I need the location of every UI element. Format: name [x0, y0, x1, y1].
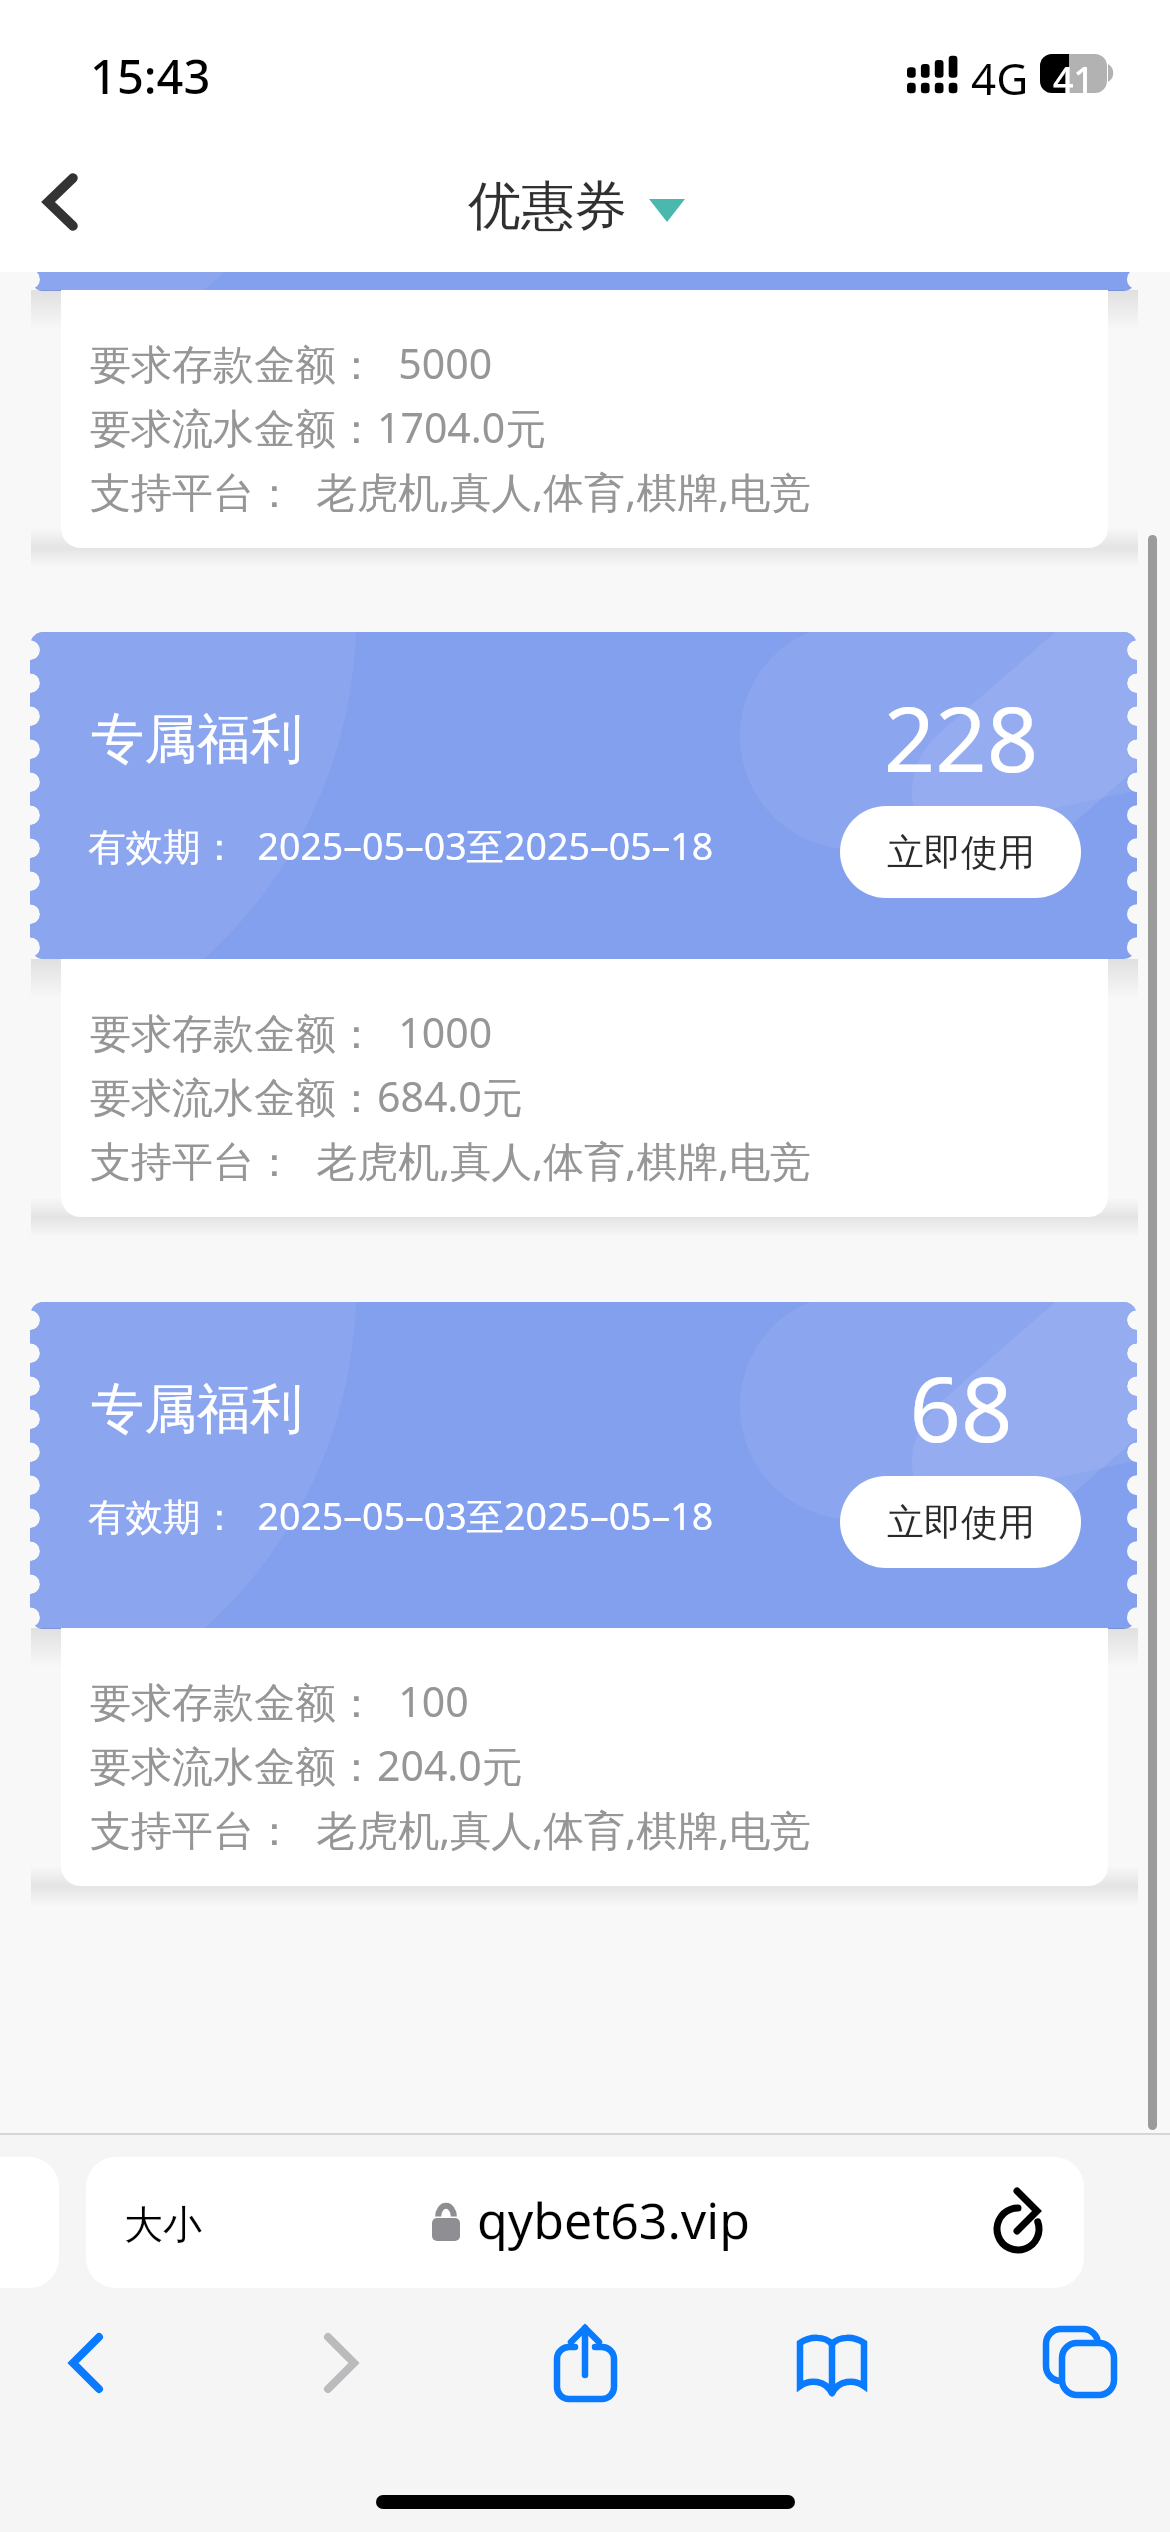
staticText: 4G [971, 48, 1029, 108]
staticText: 228 [822, 676, 1100, 799]
button[interactable]: Share [527, 2305, 643, 2421]
staticText: 大小 [124, 2200, 202, 2249]
button[interactable]: Back [29, 2305, 145, 2421]
button[interactable]: Forward [282, 2305, 398, 2421]
button[interactable]: Reload [984, 2183, 1060, 2259]
staticText: 41 [1053, 55, 1095, 104]
staticText: 专属福利 [91, 706, 303, 773]
staticText: 要求存款金额： 5000 [90, 335, 493, 391]
staticText: 228 [822, 8, 1100, 131]
staticText: 优惠券 [468, 173, 627, 240]
staticText: 68 [822, 1346, 1100, 1469]
staticText: 要求流水金额：204.0元 [90, 1737, 523, 1793]
staticText: 支持平台： 老虎机,真人,体育,棋牌,电竞 [90, 463, 812, 519]
button[interactable]: Tabs [1022, 2305, 1138, 2421]
staticText: 有效期： 2025–05–03至2025–05–18 [88, 820, 714, 871]
staticText: qybet63.vip [477, 2186, 750, 2254]
button[interactable]: 立即使用 [840, 806, 1081, 898]
staticText: 立即使用 [887, 829, 1035, 876]
staticText: 支持平台： 老虎机,真人,体育,棋牌,电竞 [90, 1801, 812, 1857]
button[interactable]: 立即使用 [840, 1476, 1081, 1568]
staticText: 专属福利 [91, 1376, 303, 1443]
staticText: 要求存款金额： 1000 [90, 1004, 493, 1060]
staticText: 要求流水金额：684.0元 [90, 1068, 523, 1124]
staticText: 有效期： 2025–05–03至2025–05–18 [88, 1490, 714, 1541]
button[interactable]: 大小 [86, 2157, 1084, 2288]
staticText: 立即使用 [887, 1499, 1035, 1546]
staticText: 要求流水金额：1704.0元 [90, 399, 547, 455]
staticText: 支持平台： 老虎机,真人,体育,棋牌,电竞 [90, 1132, 812, 1188]
staticText: 15:43 [90, 44, 211, 108]
button[interactable]: Bookmarks [774, 2305, 890, 2421]
button[interactable]: Back [8, 152, 112, 252]
staticText: 有效期： 2025–05–03至2025–05–18 [88, 152, 714, 203]
button[interactable]: 优惠券 [468, 170, 685, 242]
staticText: 要求存款金额： 100 [90, 1673, 469, 1729]
staticText: 专属福利 [91, 38, 303, 105]
